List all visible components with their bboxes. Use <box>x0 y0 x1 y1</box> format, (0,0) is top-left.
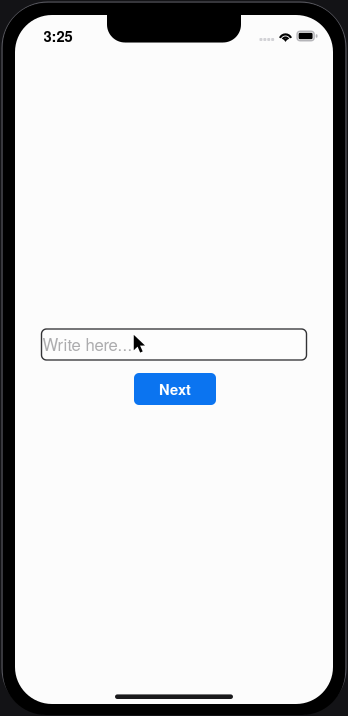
staticText: Next <box>159 378 191 399</box>
staticText: Write here... <box>42 332 132 356</box>
button[interactable]: Write here... <box>41 329 306 360</box>
staticText: 3:25 <box>43 25 72 46</box>
button[interactable]: Next <box>134 373 216 405</box>
